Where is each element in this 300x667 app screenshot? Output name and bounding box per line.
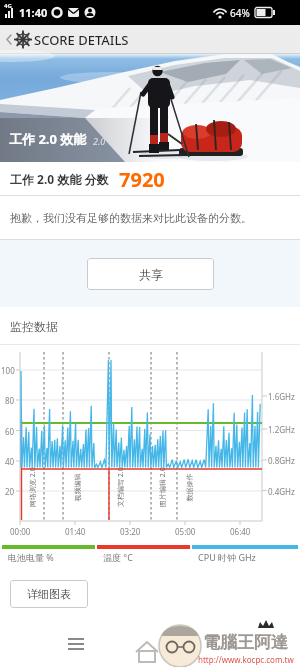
staticText: 网络浏览 2.0 (28, 467, 38, 507)
staticText: 06:40 (230, 526, 251, 537)
staticText: http://www.kocpc.com.tw (198, 654, 294, 665)
staticText: SCORE DETAILS (34, 31, 129, 49)
staticText: 11:40 (19, 5, 48, 20)
staticText: 7920 (119, 166, 165, 193)
button[interactable]: 详细图表 (10, 580, 88, 608)
staticText: 00:00 (10, 526, 31, 537)
staticText: 0.8GHz (268, 455, 295, 466)
staticText: 40 (5, 456, 15, 467)
staticText: 监控数据 (10, 319, 58, 334)
staticText: 抱歉，我们没有足够的数据来对比此设备的分数。 (10, 211, 252, 225)
button[interactable] (60, 630, 92, 658)
staticText: 4G (4, 2, 12, 10)
button[interactable]: 共享 (87, 258, 214, 290)
staticText: 工作 2.0 效能 (9, 130, 87, 148)
staticText: 共享 (139, 267, 163, 282)
staticText: 2.0 (93, 135, 106, 147)
staticText: 温度 °C (103, 551, 133, 563)
staticText: 1.6GHz (268, 391, 295, 402)
staticText: 视频编辑 (72, 473, 81, 501)
staticText: 0.4GHz (268, 486, 295, 497)
staticText: CPU 时钟 GHz (198, 551, 256, 563)
button[interactable]: SCORE DETAILS (0, 25, 129, 54)
staticText: 01:40 (65, 526, 86, 537)
staticText: 80 (5, 395, 15, 406)
staticText: 详细图表 (27, 587, 71, 601)
staticText: 图片编辑 2.0 (158, 467, 168, 507)
staticText: 60 (5, 426, 15, 437)
staticText: 工作 2.0 效能 分数 (10, 171, 109, 187)
staticText: 数据操作 (184, 473, 193, 501)
staticText: 電腦王阿達 (203, 632, 288, 653)
staticText: 20 (5, 486, 15, 497)
staticText: 05:00 (175, 526, 196, 537)
staticText: 电池电量 % (8, 551, 54, 563)
staticText: 64% (230, 6, 250, 20)
staticText: 100 (1, 365, 15, 376)
staticText: 文档编写 2.0 (116, 467, 126, 507)
staticText: 1.2GHz (268, 424, 295, 435)
staticText: 03:20 (120, 526, 141, 537)
